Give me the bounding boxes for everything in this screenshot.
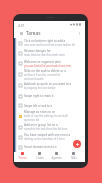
staticText: Más xyxy=(71,156,77,160)
staticText: Swipe left a task to e xyxy=(24,104,53,108)
staticText: Manage as notes to se xyxy=(24,110,55,114)
button[interactable]: More options xyxy=(75,29,83,37)
button[interactable]: Smart domain item to e xyxy=(14,142,85,152)
button[interactable]: Add task xyxy=(73,140,81,148)
staticText: tasks or use the settings to see it all xyxy=(24,114,68,118)
button[interactable]: Agenda xyxy=(48,152,65,162)
button[interactable]: Swipe left a task to e xyxy=(14,101,85,110)
staticText: clicking on the interface of it here xyxy=(24,137,65,141)
staticText: You have swiped with one more a xyxy=(24,133,71,137)
staticText: Tareas xyxy=(18,156,27,160)
button[interactable]: Review changes for xyxy=(14,48,85,58)
staticText: new note and turn it into a new task to … xyxy=(24,43,75,47)
button[interactable]: You have swiped with one more a xyxy=(14,132,85,142)
staticText: Add task as quick as you want to a xyxy=(24,82,72,86)
staticText: tasks that are due this week soon xyxy=(24,53,65,57)
staticText: Click on bottom right to add a xyxy=(24,39,66,43)
staticText: opciones dis xyxy=(24,118,40,122)
button[interactable]: Welcome to organizer whe xyxy=(14,58,85,69)
button[interactable]: Swipe right to mark it xyxy=(14,91,85,101)
staticText: archive it from the current list xyxy=(24,73,61,77)
staticText: Add an in group list on a xyxy=(24,123,58,127)
button[interactable]: Slide on the task to delete or a xyxy=(14,69,85,80)
button[interactable]: Menu xyxy=(17,29,25,37)
staticText: 4:01 xyxy=(18,23,25,27)
button[interactable]: Click on bottom right to add a xyxy=(14,38,85,48)
button[interactable]: Manage as notes to se xyxy=(14,110,85,122)
staticText: Tareas xyxy=(26,30,41,37)
button[interactable]: Add task as quick as you want to a xyxy=(14,80,85,91)
button[interactable]: Add an in group list on a xyxy=(14,122,85,132)
staticText: Swipe right to mark it xyxy=(24,94,54,98)
button[interactable]: Listas xyxy=(31,152,48,162)
staticText: Review changes for xyxy=(24,49,51,53)
button[interactable]: Más xyxy=(65,152,82,162)
staticText: complete the task from the list here xyxy=(24,127,68,131)
staticText: Welcome to organizer whe xyxy=(24,60,61,64)
staticText: Smart domain item to e xyxy=(24,145,57,149)
staticText: Listas xyxy=(36,156,44,160)
staticText: Agenda xyxy=(51,156,62,160)
staticText: Slide on the task to delete or a xyxy=(24,69,66,73)
staticText: by tapping the icon below xyxy=(24,86,56,90)
staticText: and use it again xyxy=(24,77,44,80)
staticText: you can find all of your tasks here now xyxy=(24,64,71,68)
button[interactable]: Tareas xyxy=(14,152,31,162)
